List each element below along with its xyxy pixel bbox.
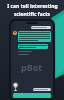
button[interactable]: [31, 26, 51, 29]
button[interactable]: pBot: [11, 21, 53, 98]
staticText: pBot: [21, 61, 43, 73]
button[interactable]: [33, 88, 51, 91]
button[interactable]: [13, 93, 51, 98]
button[interactable]: [18, 31, 51, 42]
staticText: scientific facts: [14, 11, 50, 18]
button[interactable]: [18, 44, 48, 49]
staticText: I can tell interesting: [7, 3, 58, 10]
other: Idea lamp: [13, 83, 18, 91]
other: Bot avatar: [13, 31, 17, 35]
